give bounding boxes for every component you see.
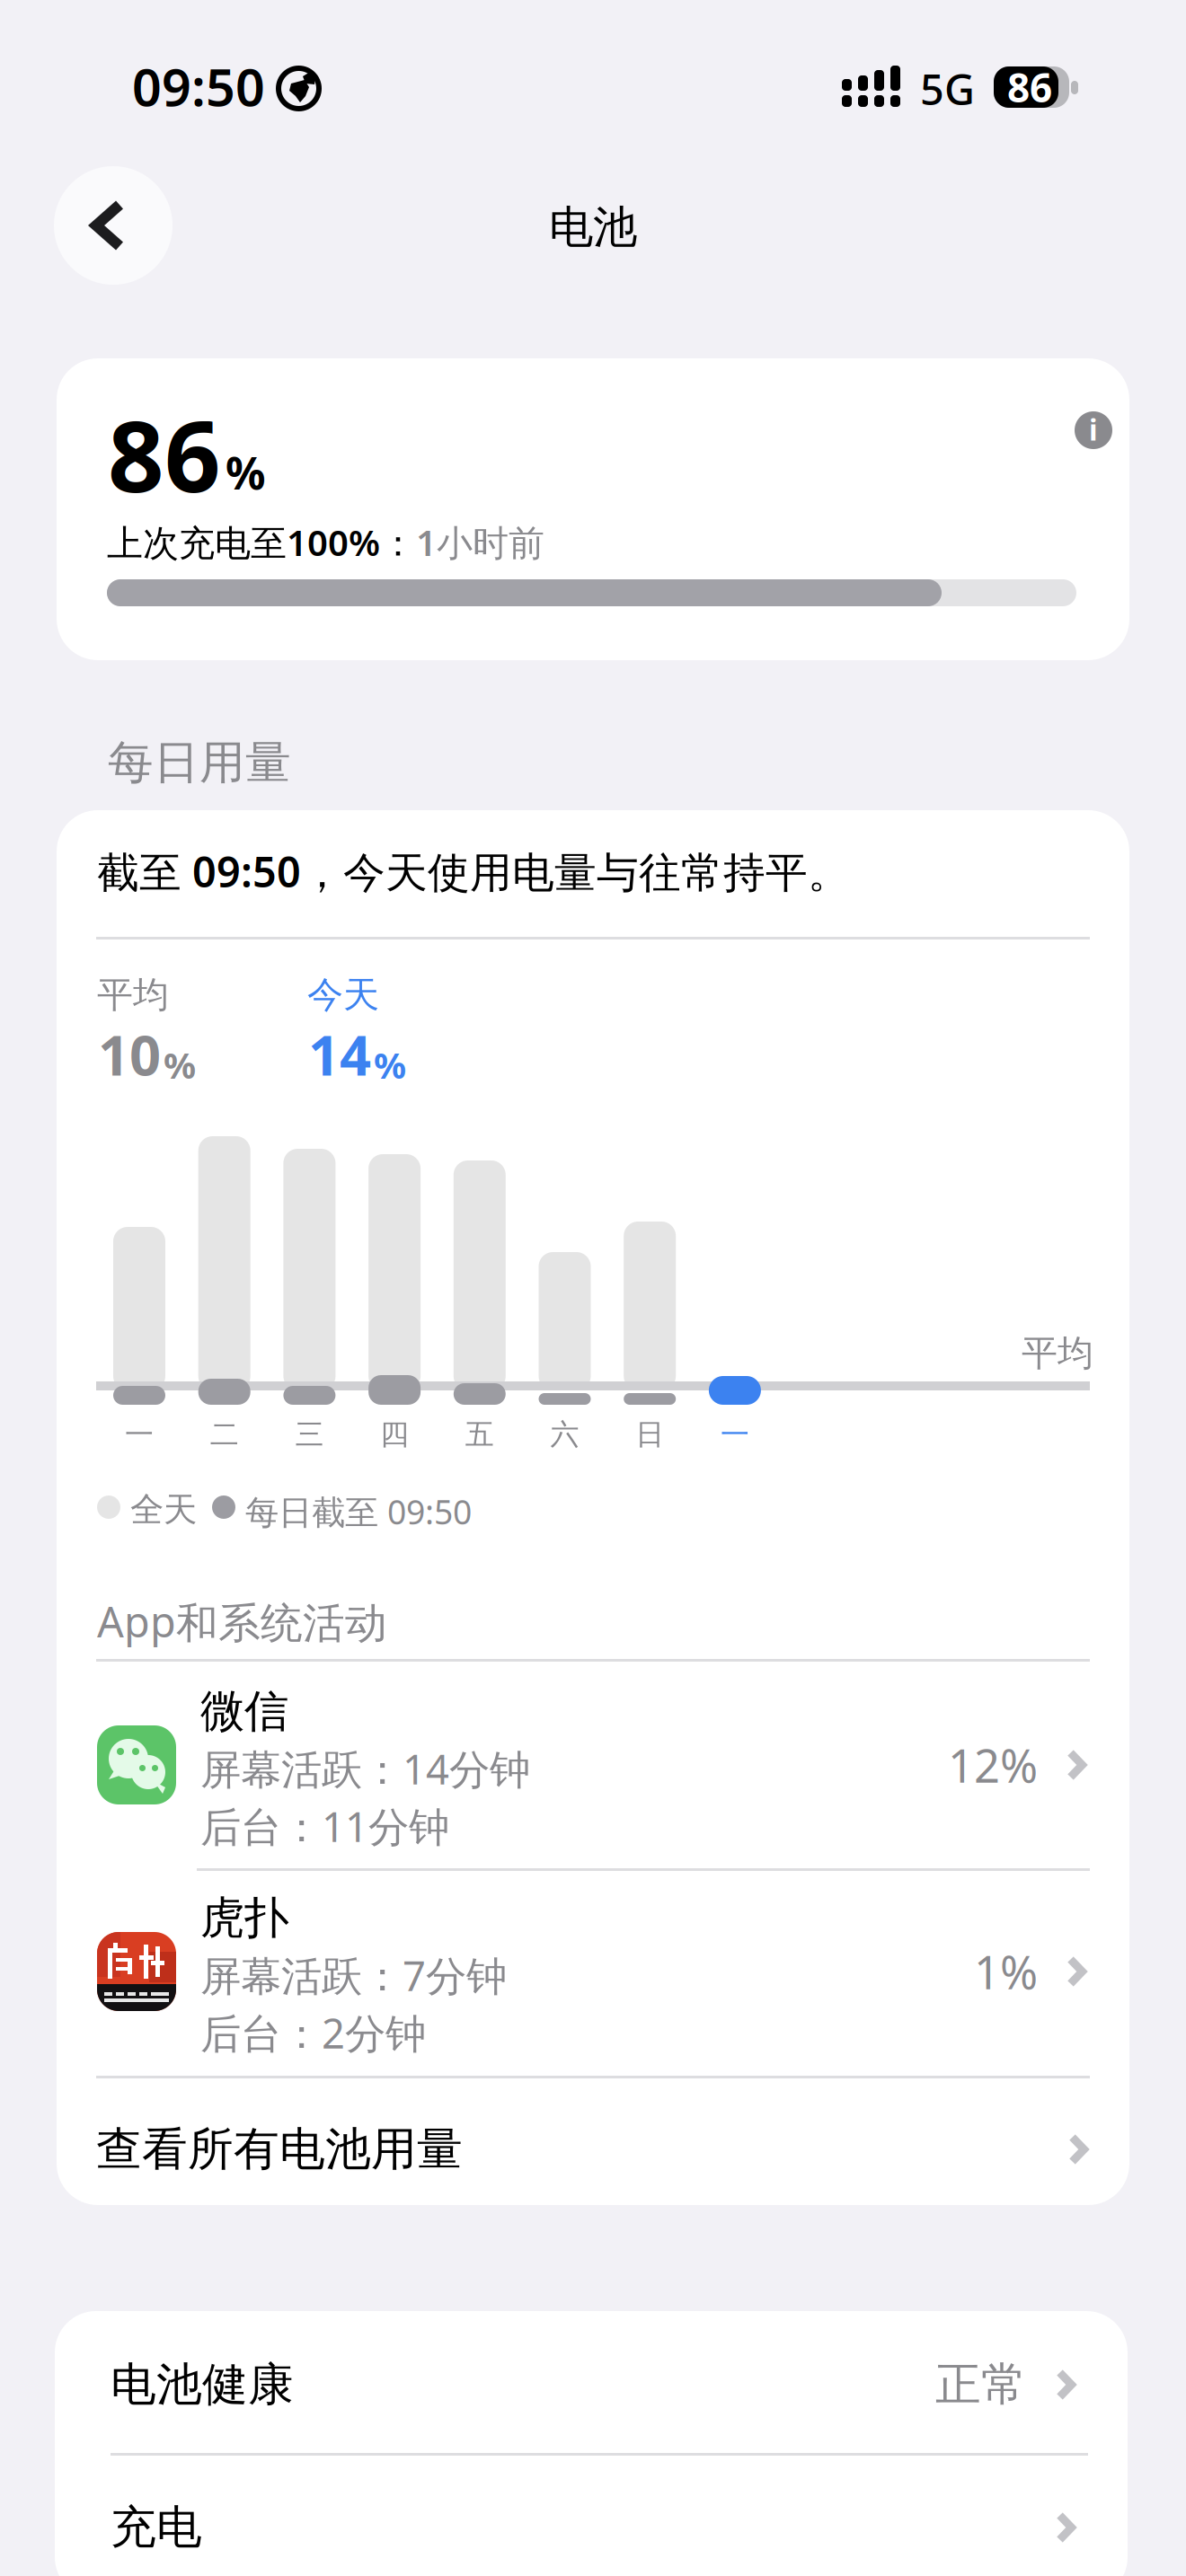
staticText: 微信	[200, 1684, 288, 1739]
staticText: 09:50	[132, 52, 265, 120]
staticText: 五	[465, 1417, 494, 1452]
staticText: %	[164, 1041, 196, 1089]
staticText: 三	[295, 1417, 324, 1452]
staticText: i	[1089, 410, 1098, 448]
staticText: 屏幕活跃：7分钟	[200, 1948, 507, 2002]
button[interactable]: Battery info	[1038, 403, 1149, 457]
staticText: App和系统活动	[97, 1593, 387, 1649]
button[interactable]: Back	[54, 166, 173, 285]
staticText: 每日截至 09:50	[245, 1489, 472, 1534]
staticText: 1%	[974, 1941, 1038, 2002]
staticText: %	[374, 1041, 406, 1089]
button[interactable]: 虎扑	[96, 1882, 1090, 2061]
staticText: 12%	[948, 1735, 1038, 1795]
staticText: 全天	[130, 1489, 197, 1530]
staticText: %	[226, 443, 265, 502]
staticText: 正常	[935, 2357, 1027, 2413]
staticText: 5G	[920, 61, 975, 117]
staticText: 虎扑	[200, 1891, 288, 1945]
staticText: 后台：2分钟	[200, 2006, 426, 2060]
staticText: 10	[98, 1018, 161, 1091]
staticText: 充电	[111, 2500, 202, 2555]
staticText: 电池健康	[111, 2357, 294, 2413]
staticText: 每日用量	[108, 735, 291, 791]
staticText: 1小时前	[416, 518, 544, 566]
staticText: 电池	[549, 200, 637, 254]
staticText: 86	[108, 389, 221, 519]
staticText: 平均	[1022, 1331, 1093, 1375]
staticText: 上次充电至100%：	[107, 518, 416, 566]
staticText: 平均	[97, 973, 169, 1017]
button[interactable]: 查看所有电池用量	[96, 2085, 1090, 2214]
staticText: 查看所有电池用量	[96, 2121, 463, 2177]
button[interactable]: 电池健康	[94, 2320, 1088, 2449]
staticText: 四	[380, 1417, 409, 1452]
staticText: 日	[635, 1417, 664, 1452]
staticText: 后台：11分钟	[200, 1799, 449, 1853]
staticText: 一	[125, 1417, 154, 1452]
button[interactable]: 充电	[94, 2463, 1088, 2576]
staticText: 今天	[307, 973, 379, 1017]
staticText: 屏幕活跃：14分钟	[200, 1742, 530, 1796]
staticText: 截至 09:50，今天使用电量与往常持平。	[97, 843, 850, 899]
staticText: 六	[550, 1417, 579, 1452]
staticText: 一	[720, 1417, 749, 1452]
button[interactable]: 微信	[96, 1675, 1090, 1855]
staticText: 14	[308, 1018, 371, 1091]
staticText: 二	[210, 1417, 239, 1452]
staticText: 86	[1007, 61, 1052, 113]
